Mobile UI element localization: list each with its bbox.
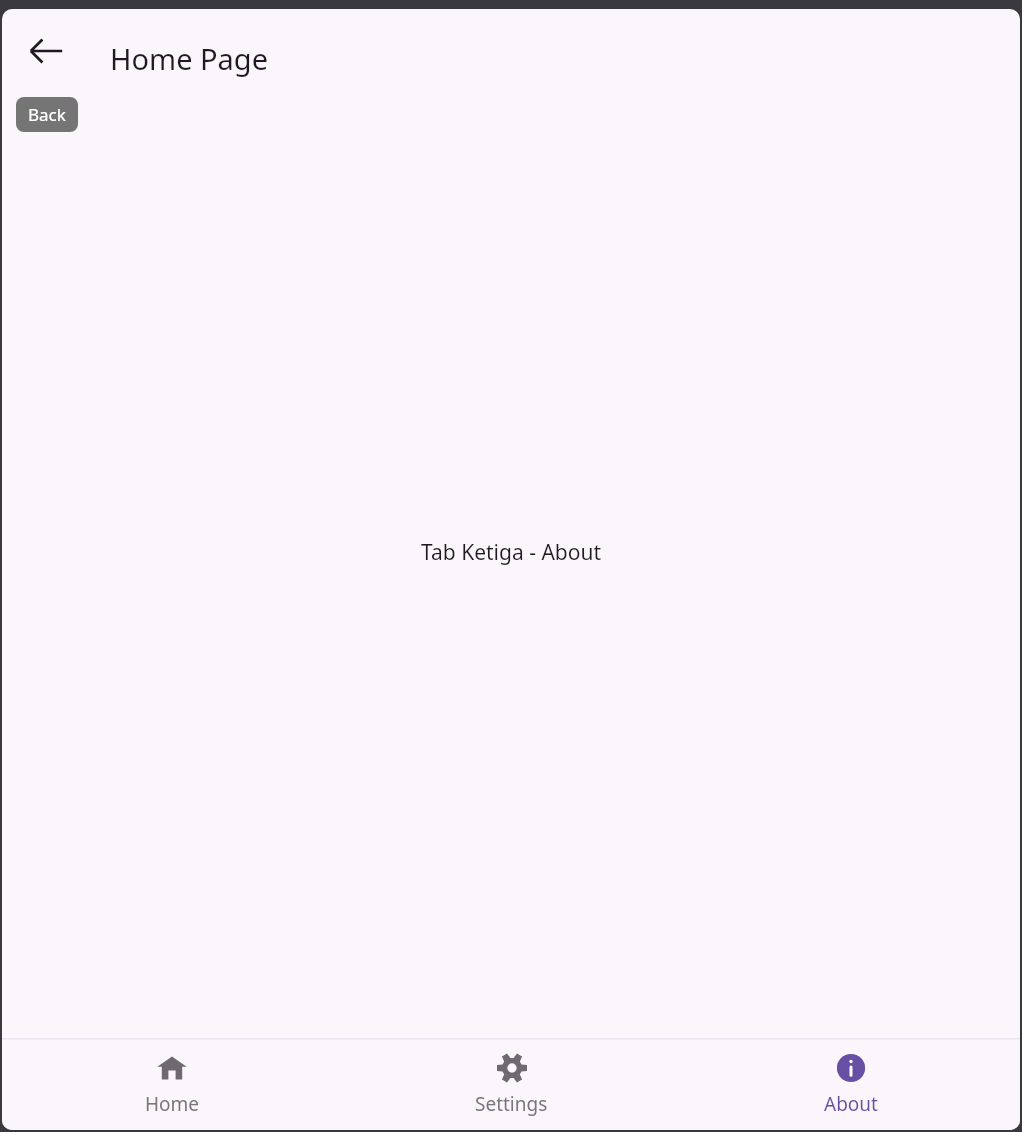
- button[interactable]: About: [681, 1038, 1020, 1130]
- button[interactable]: Settings: [342, 1038, 681, 1130]
- button[interactable]: Home: [2, 1038, 342, 1130]
- staticText: Home Page: [110, 39, 269, 78]
- button[interactable]: Back: [14, 19, 78, 83]
- staticText: Tab Ketiga - About: [421, 538, 601, 567]
- staticText: About: [824, 1091, 878, 1117]
- staticText: Settings: [475, 1091, 548, 1117]
- staticText: Back: [28, 103, 66, 126]
- staticText: Home: [145, 1091, 200, 1117]
